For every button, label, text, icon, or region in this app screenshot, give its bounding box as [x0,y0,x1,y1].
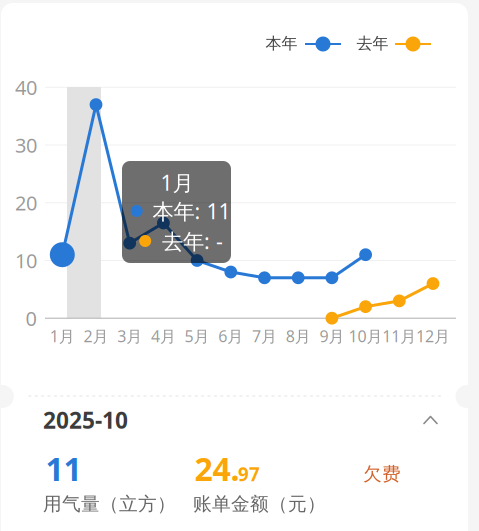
staticText: 30 [15,132,37,158]
staticText: 2月 [83,325,108,347]
staticText: 9月 [319,325,344,347]
staticText: 97 [238,462,260,486]
staticText: 4月 [151,325,176,347]
staticText: 10 [15,247,37,274]
staticText: 40 [15,74,37,101]
staticText: 本年: 11 [152,197,230,225]
button[interactable]: 2025-10 [0,0,479,531]
staticText: 3月 [117,325,142,347]
staticText: 11月 [382,325,416,347]
staticText: 5月 [185,325,210,347]
staticText: 12月 [416,325,450,347]
staticText: 24. [194,447,239,490]
staticText: 用气量（立方） [43,492,176,515]
staticText: 10月 [349,325,383,347]
staticText: 7月 [252,325,277,347]
staticText: 2025-10 [43,405,128,435]
staticText: 去年: - [162,227,223,255]
staticText: 8月 [286,325,311,347]
staticText: 本年 [265,34,297,53]
staticText: 11 [45,447,81,490]
staticText: 0 [25,305,36,331]
staticText: 账单金额（元） [193,492,326,515]
staticText: 欠费 [363,462,401,485]
staticText: 6月 [218,325,243,347]
staticText: 20 [15,189,37,216]
staticText: 1月 [50,325,75,347]
staticText: 去年 [356,34,388,53]
staticText: 1月 [160,168,193,197]
